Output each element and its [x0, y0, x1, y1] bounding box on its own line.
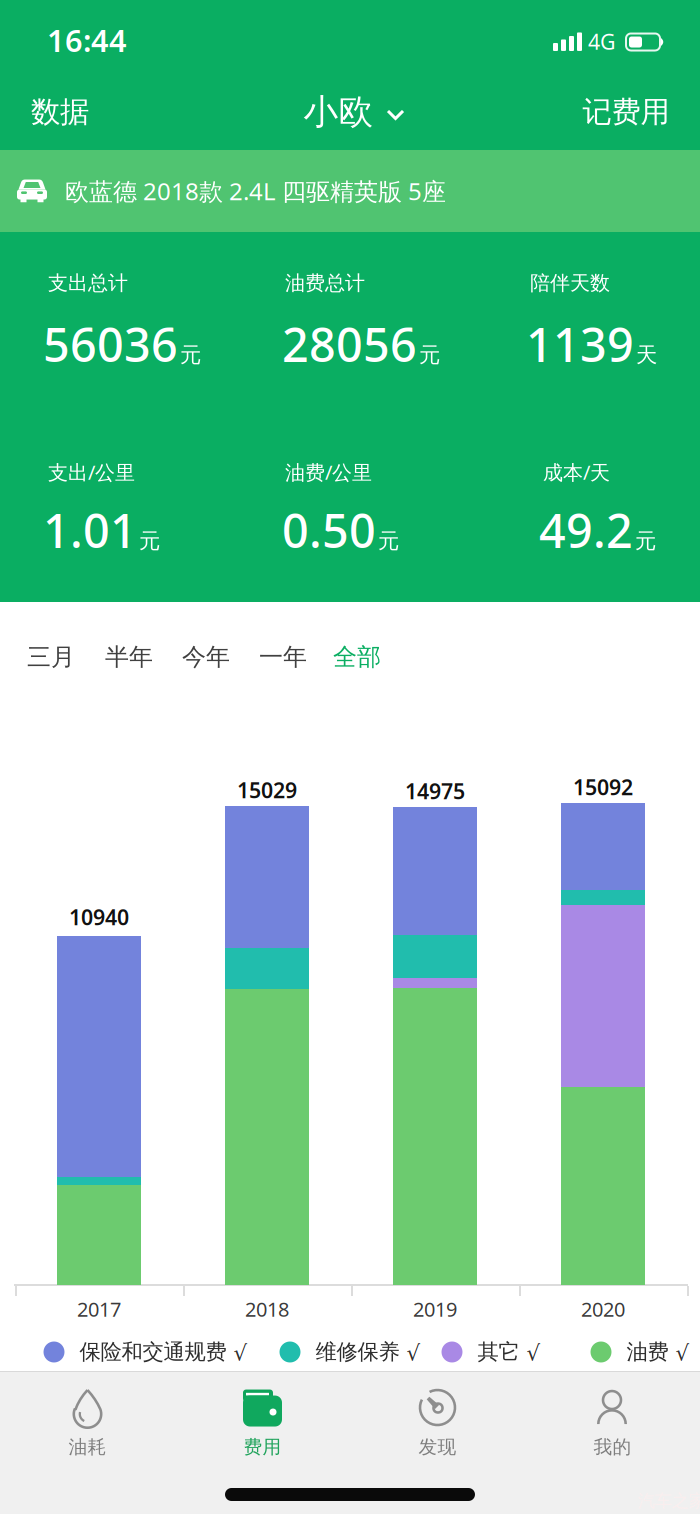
staticText: 2017: [77, 1296, 121, 1322]
staticText: 半年: [105, 642, 153, 672]
button[interactable]: 今年: [182, 642, 242, 672]
staticText: 元: [635, 528, 656, 554]
staticText: 今年: [182, 642, 230, 672]
button[interactable]: 一年: [259, 642, 319, 672]
staticText: 2020: [581, 1296, 625, 1322]
staticText: 15029: [237, 776, 297, 804]
staticText: 一年: [259, 642, 307, 672]
button[interactable]: 保险和交通规费 √: [43, 1339, 303, 1365]
staticText: 4G: [588, 27, 616, 56]
staticText: 15092: [573, 773, 633, 801]
staticText: 记费用: [582, 94, 669, 130]
staticText: 元: [378, 528, 399, 554]
button[interactable]: 发现: [350, 1380, 525, 1464]
staticText: 发现: [418, 1435, 456, 1458]
staticText: 0.50: [282, 499, 376, 561]
staticText: 油费 √: [626, 1339, 689, 1365]
staticText: 油费/公里: [285, 459, 372, 485]
staticText: 支出总计: [48, 271, 128, 295]
staticText: 欧蓝德 2018款 2.4L 四驱精英版 5座: [65, 175, 446, 207]
button[interactable]: 其它 √: [441, 1339, 700, 1365]
staticText: 2019: [413, 1296, 457, 1322]
button[interactable]: 数据: [31, 94, 89, 130]
staticText: 维修保养 √: [315, 1339, 420, 1365]
staticText: 49.2: [539, 499, 633, 561]
staticText: 三月: [27, 642, 75, 672]
staticText: 元: [139, 528, 160, 554]
button[interactable]: 费用: [175, 1380, 350, 1464]
staticText: 油费总计: [285, 271, 365, 295]
button[interactable]: 记费用: [582, 94, 669, 130]
staticText: 56036: [43, 313, 178, 375]
staticText: 我的: [593, 1435, 631, 1458]
staticText: 数据: [31, 94, 89, 130]
staticText: 支出/公里: [48, 459, 135, 485]
staticText: 28056: [282, 313, 417, 375]
staticText: 保险和交通规费 √: [79, 1339, 247, 1365]
staticText: 费用: [243, 1435, 281, 1458]
button[interactable]: 我的: [525, 1380, 700, 1464]
button[interactable]: 三月: [27, 642, 87, 672]
button[interactable]: 全部: [333, 642, 393, 672]
staticText: 其它 √: [477, 1339, 540, 1365]
staticText: 油耗: [68, 1435, 106, 1458]
button[interactable]: 油耗: [0, 1380, 175, 1464]
staticText: 2018: [245, 1296, 289, 1322]
staticText: 14975: [405, 777, 465, 805]
button[interactable]: 小欧: [303, 91, 404, 133]
staticText: 天: [636, 342, 657, 368]
button[interactable]: 半年: [105, 642, 165, 672]
button[interactable]: 欧蓝德 2018款 2.4L 四驱精英版 5座: [0, 150, 700, 232]
staticText: 元: [180, 342, 201, 368]
staticText: 小欧: [303, 91, 373, 133]
button[interactable]: 油费 √: [590, 1339, 700, 1365]
staticText: 1.01: [43, 499, 137, 561]
staticText: 16:44: [47, 20, 127, 60]
button[interactable]: 维修保养 √: [279, 1339, 539, 1365]
staticText: 1139: [526, 313, 634, 375]
staticText: 10940: [69, 903, 129, 931]
staticText: 全部: [333, 642, 381, 672]
staticText: 成本/天: [543, 459, 610, 485]
staticText: 陪伴天数: [530, 271, 610, 295]
staticText: 元: [419, 342, 440, 368]
